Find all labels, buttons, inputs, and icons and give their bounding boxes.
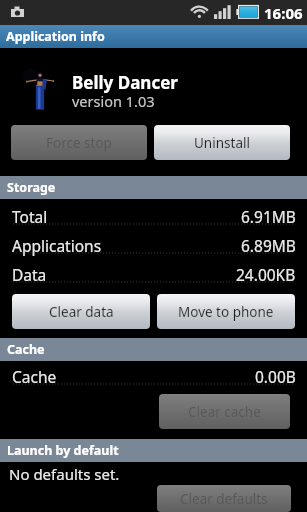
button[interactable]: Clear cache (159, 394, 290, 429)
staticText: Belly Dancer (72, 71, 178, 94)
staticText: 24.00KB (236, 264, 296, 285)
button[interactable]: Move to phone (157, 294, 295, 329)
button[interactable]: Total (0, 199, 307, 228)
button[interactable]: Uninstall (154, 125, 290, 160)
staticText: 0.00B (255, 366, 296, 387)
staticText: No defaults set. (9, 464, 120, 484)
button[interactable]: Applications (0, 228, 307, 257)
staticText: version 1.03 (72, 91, 155, 111)
staticText: Uninstall (194, 134, 250, 152)
staticText: 6.89MB (241, 235, 296, 256)
staticText: Data (12, 264, 47, 285)
staticText: Clear defaults (180, 490, 268, 508)
button[interactable]: Force stop (11, 125, 147, 160)
staticText: Launch by default (7, 442, 119, 459)
staticText: Application info (6, 28, 105, 45)
staticText: Cache (12, 366, 57, 387)
staticText: Force stop (46, 134, 112, 152)
staticText: 6.91MB (241, 206, 296, 227)
button[interactable]: Clear data (12, 294, 150, 329)
staticText: Cache (7, 341, 45, 358)
staticText: 16:06 (264, 3, 303, 23)
staticText: Clear cache (188, 403, 261, 421)
button[interactable]: Data (0, 257, 307, 286)
button[interactable]: Cache (0, 361, 307, 394)
staticText: Applications (12, 235, 102, 256)
staticText: Move to phone (178, 303, 274, 321)
staticText: Total (12, 206, 48, 227)
button[interactable]: Clear defaults (157, 485, 291, 512)
staticText: Clear data (49, 303, 114, 321)
staticText: Storage (7, 179, 56, 196)
